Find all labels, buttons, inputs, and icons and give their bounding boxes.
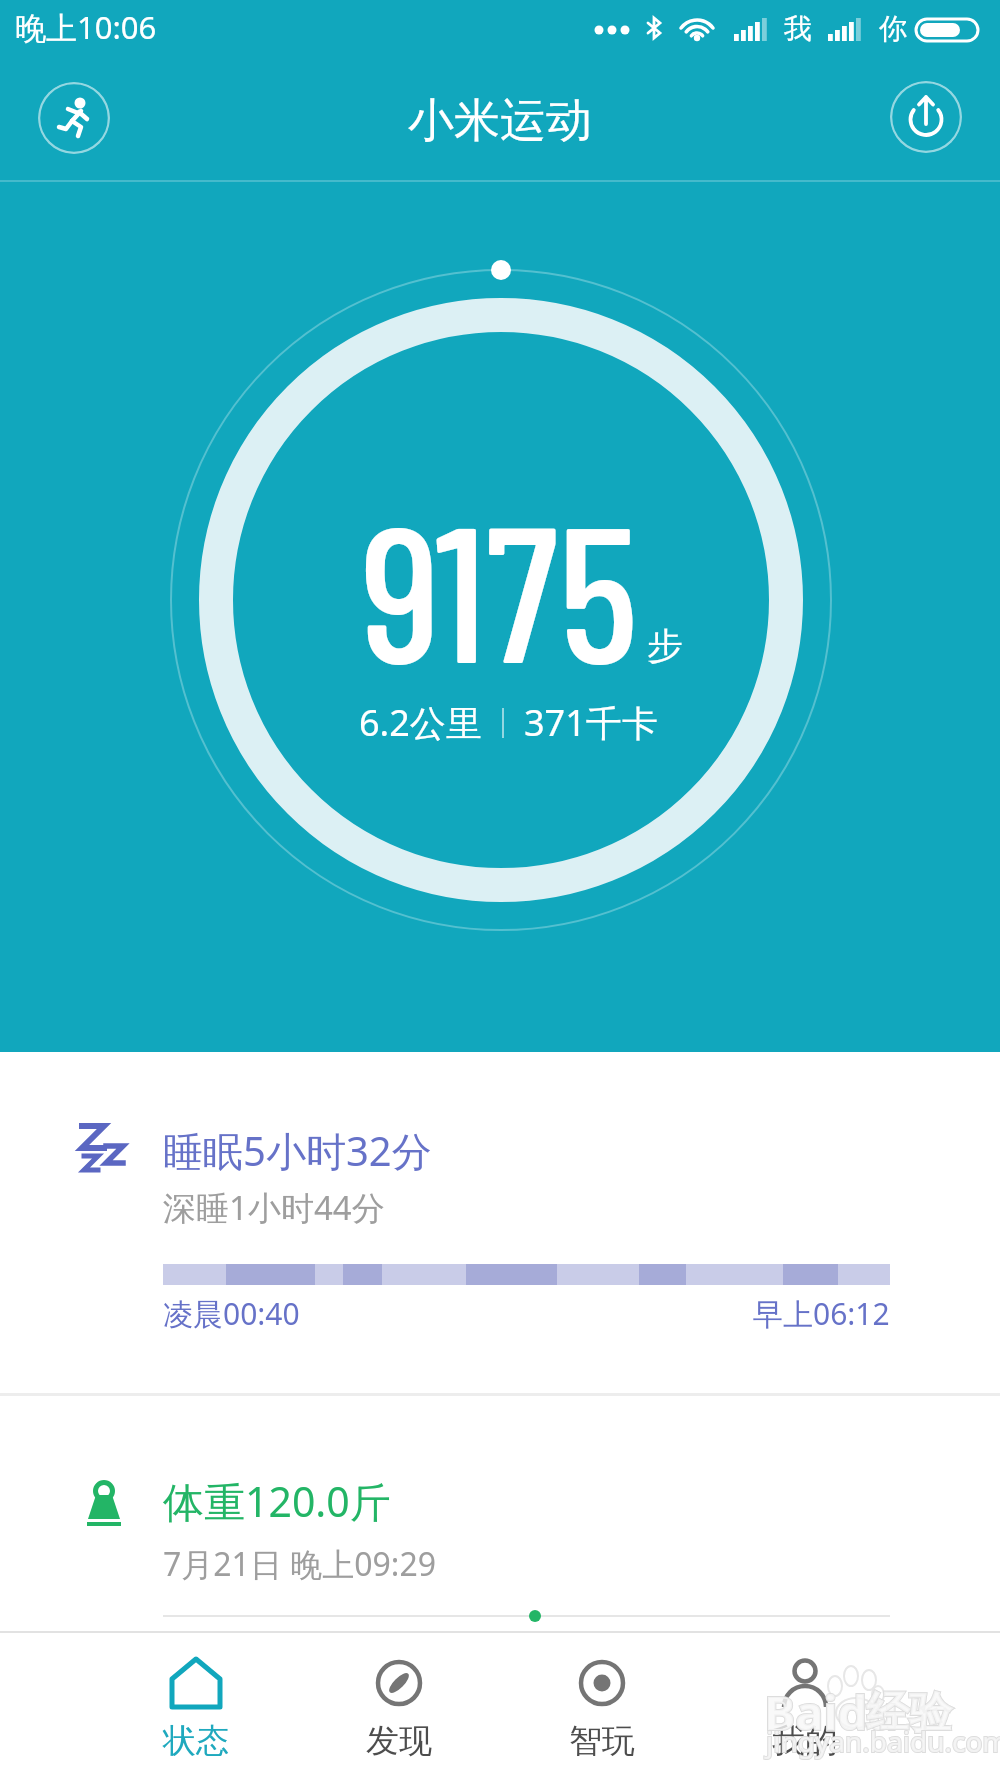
- staticText: 早上06:12: [753, 1293, 890, 1334]
- staticText: 你: [879, 11, 907, 46]
- staticText: 发现: [366, 1720, 432, 1762]
- staticText: Baidu: [764, 1680, 898, 1744]
- staticText: 晚上10:06: [15, 6, 157, 48]
- button[interactable]: 发现: [297, 1633, 500, 1777]
- staticText: 小米运动: [408, 92, 592, 150]
- button[interactable]: [38, 82, 110, 154]
- staticText: 371千卡: [524, 698, 658, 747]
- staticText: 我: [784, 11, 812, 46]
- staticText: jingyan.baidu.com: [766, 1722, 1000, 1760]
- staticText: 凌晨00:40: [163, 1293, 300, 1334]
- staticText: 经验: [866, 1686, 952, 1740]
- staticText: 经验: [866, 1686, 952, 1740]
- staticText: jingyan.baidu.com: [766, 1722, 1000, 1760]
- button[interactable]: 睡眠5小时32分: [0, 1052, 1000, 1393]
- button[interactable]: [890, 81, 962, 153]
- button[interactable]: 我的: [703, 1633, 906, 1777]
- staticText: 睡眠5小时32分: [163, 1123, 432, 1178]
- staticText: 步: [647, 623, 683, 668]
- staticText: 7月21日 晚上09:29: [163, 1542, 437, 1586]
- button[interactable]: 智玩: [500, 1633, 703, 1777]
- button[interactable]: 状态: [94, 1633, 297, 1777]
- staticText: 深睡1小时44分: [163, 1185, 385, 1230]
- staticText: 6.2公里: [359, 698, 482, 747]
- staticText: 状态: [163, 1720, 229, 1762]
- staticText: 体重120.0斤: [163, 1473, 391, 1529]
- staticText: 9175: [361, 472, 639, 701]
- staticText: Baidu: [764, 1680, 898, 1744]
- button[interactable]: 体重120.0斤: [0, 1396, 1000, 1631]
- staticText: 智玩: [569, 1720, 635, 1762]
- staticText: 我的: [772, 1720, 838, 1762]
